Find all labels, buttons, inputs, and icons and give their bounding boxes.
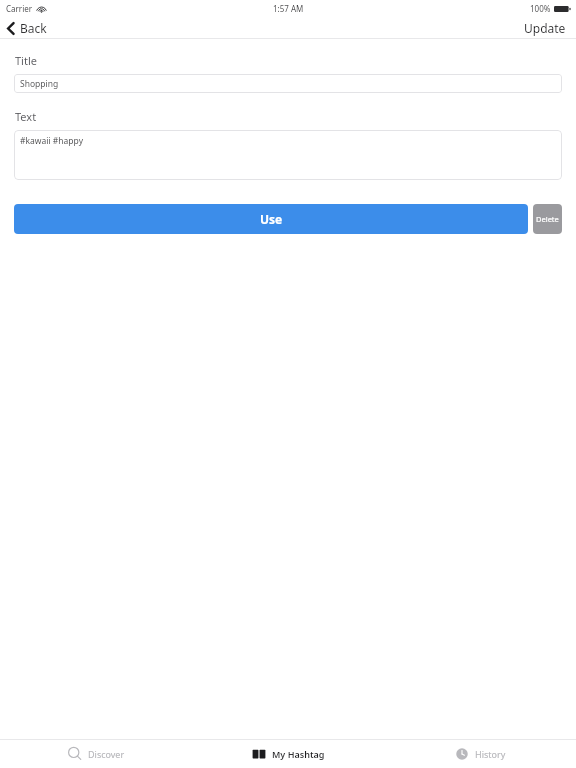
button[interactable]: Update — [514, 17, 576, 39]
button[interactable]: History — [384, 746, 576, 762]
staticText: Carrier — [6, 3, 33, 14]
staticText: Back — [20, 20, 47, 36]
staticText: #kawaii #happy — [20, 135, 83, 147]
staticText: Use — [260, 211, 283, 227]
other: History — [454, 746, 470, 762]
staticText: Update — [524, 20, 566, 36]
button[interactable]: #kawaii #happy — [14, 130, 562, 180]
button[interactable]: Use — [14, 204, 528, 234]
other: Discover — [67, 746, 83, 762]
staticText: Shopping — [20, 78, 59, 90]
staticText: History — [475, 748, 506, 760]
staticText: 100% — [530, 3, 551, 14]
button[interactable]: Delete — [533, 204, 562, 234]
staticText: My Hashtag — [272, 748, 325, 760]
button[interactable]: My Hashtag — [192, 746, 384, 762]
button[interactable]: Discover — [0, 746, 192, 762]
staticText: Discover — [88, 748, 125, 760]
other: My Hashtag — [251, 746, 267, 762]
staticText: Delete — [536, 214, 559, 224]
staticText: Title — [15, 53, 37, 68]
button[interactable]: Back — [0, 17, 57, 39]
button[interactable]: Shopping — [14, 74, 562, 93]
staticText: Text — [15, 109, 37, 124]
staticText: 1:57 AM — [273, 3, 304, 14]
